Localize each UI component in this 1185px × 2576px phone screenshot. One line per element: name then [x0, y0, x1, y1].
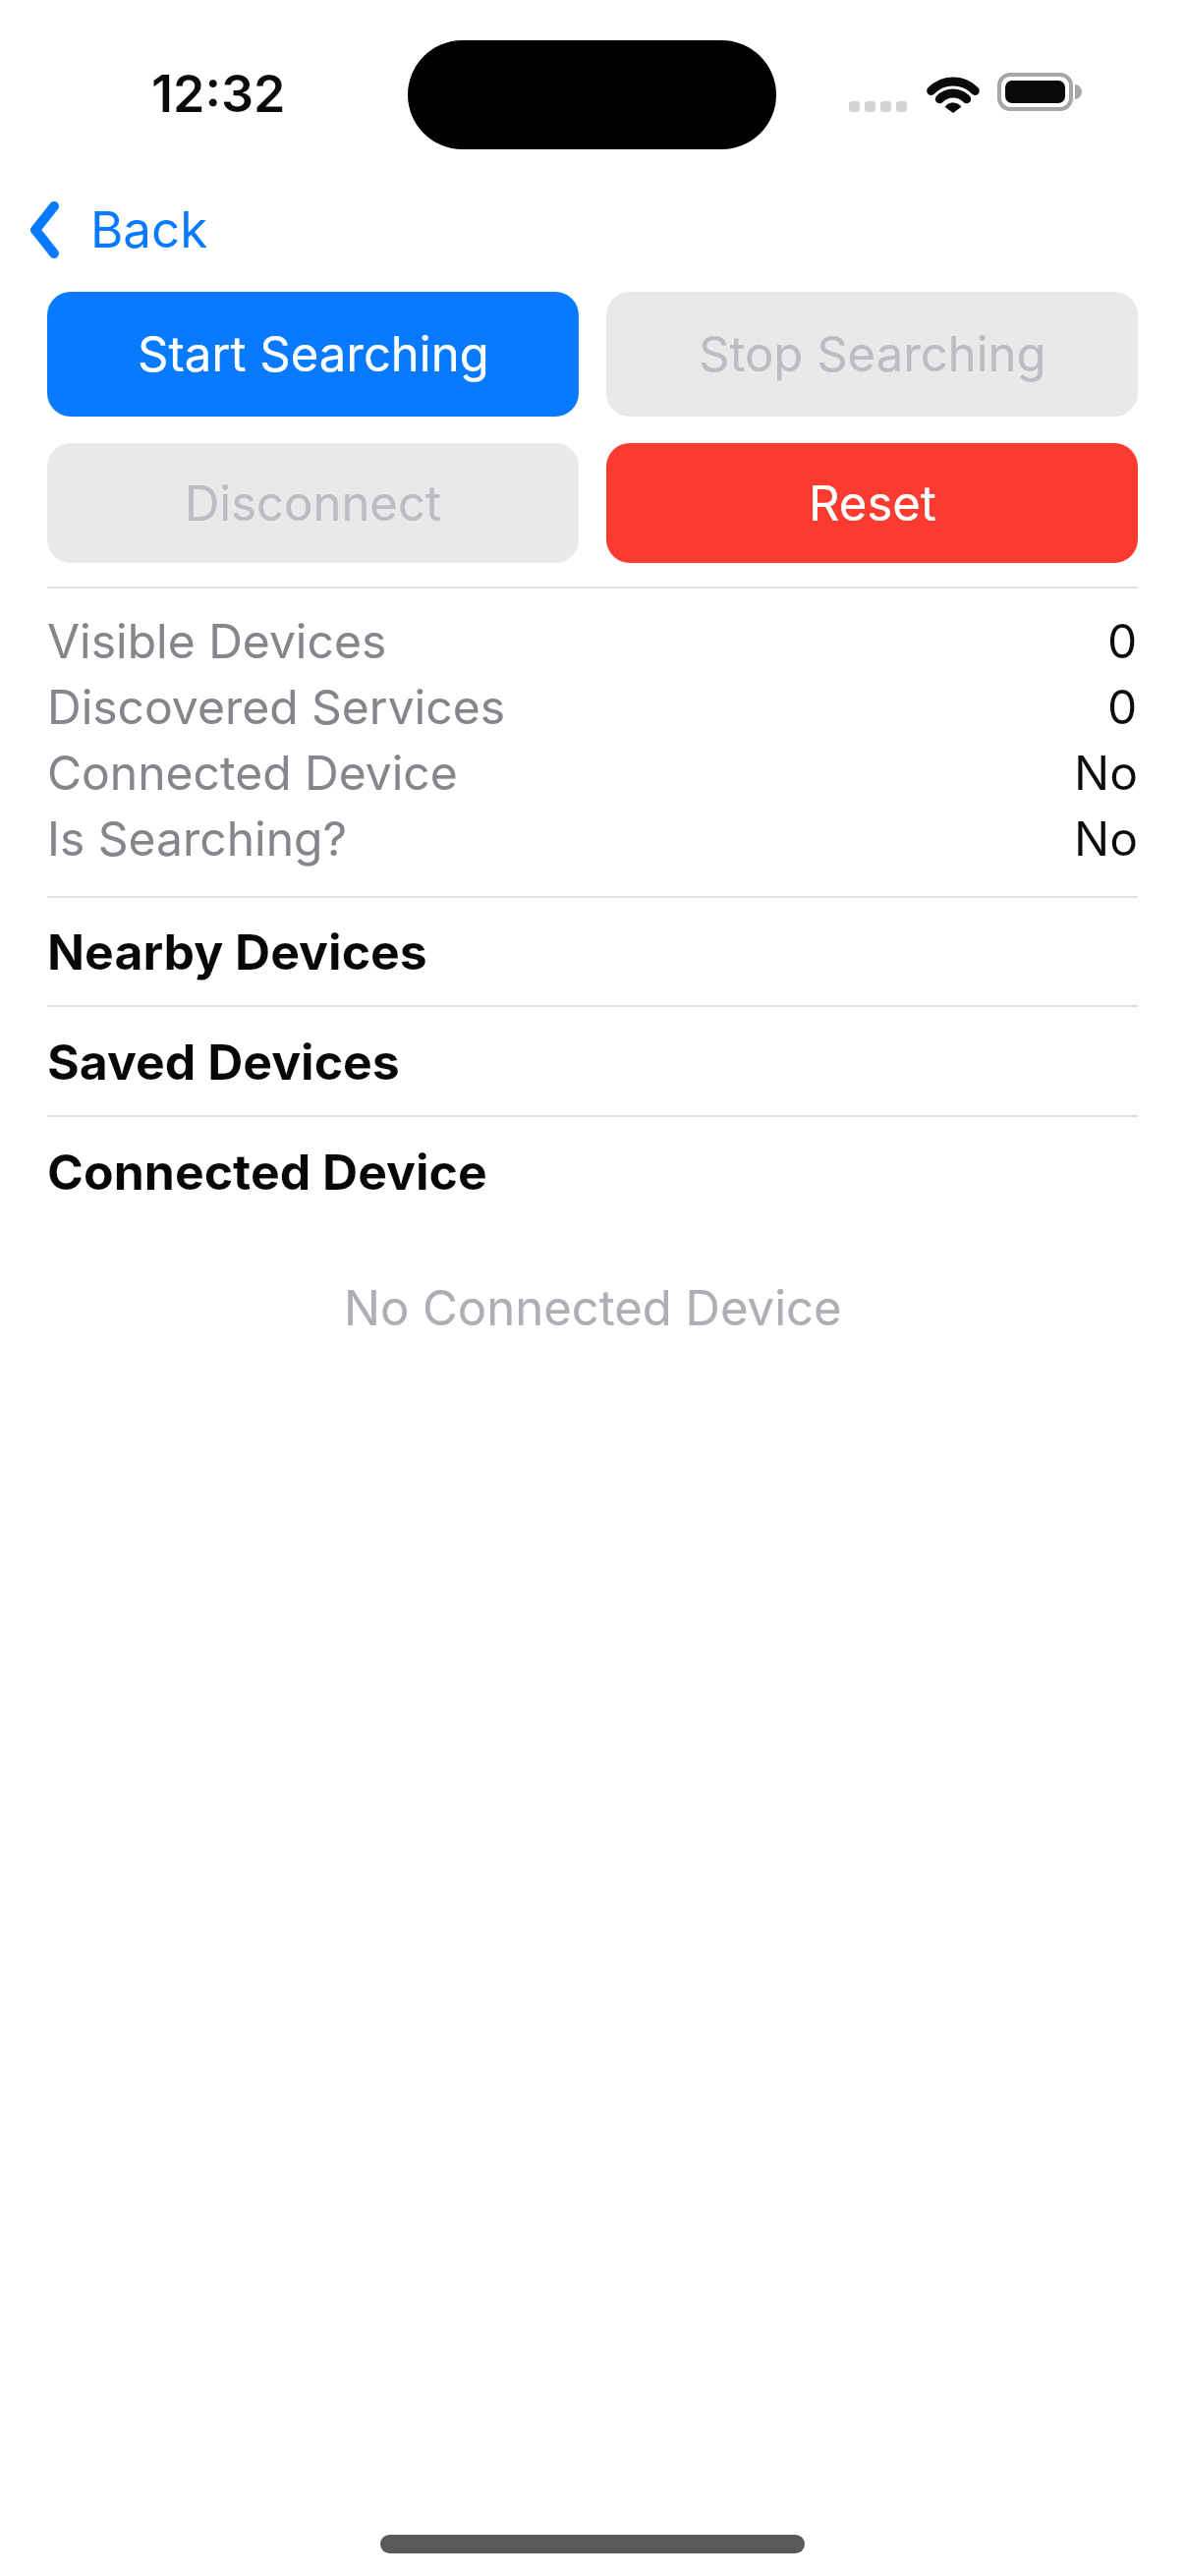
- staticText: Connected Device: [47, 744, 458, 801]
- button[interactable]: Is Searching?: [47, 805, 1138, 870]
- staticText: 0: [1107, 612, 1138, 669]
- button[interactable]: Disconnect: [47, 443, 579, 563]
- staticText: Reset: [809, 475, 936, 532]
- button[interactable]: Discovered Services: [47, 673, 1138, 739]
- staticText: Connected Device: [47, 1143, 487, 1202]
- staticText: No: [1074, 810, 1138, 867]
- button[interactable]: Visible Devices: [47, 607, 1138, 673]
- staticText: Visible Devices: [47, 612, 387, 669]
- button[interactable]: Reset: [606, 443, 1138, 563]
- staticText: 12:32: [151, 63, 286, 125]
- staticText: Nearby Devices: [47, 923, 427, 981]
- staticText: No: [1074, 744, 1138, 801]
- staticText: Disconnect: [185, 475, 441, 532]
- staticText: No Connected Device: [344, 1279, 842, 1337]
- staticText: Discovered Services: [47, 678, 505, 735]
- staticText: Start Searching: [138, 325, 489, 383]
- button[interactable]: Stop Searching: [606, 292, 1138, 417]
- button[interactable]: Back: [24, 195, 220, 265]
- staticText: Back: [90, 199, 208, 260]
- button[interactable]: Connected Device: [47, 739, 1138, 805]
- staticText: Stop Searching: [699, 325, 1046, 383]
- staticText: Saved Devices: [47, 1033, 400, 1092]
- button[interactable]: Start Searching: [47, 292, 579, 417]
- staticText: 0: [1107, 678, 1138, 735]
- staticText: Is Searching?: [47, 810, 347, 867]
